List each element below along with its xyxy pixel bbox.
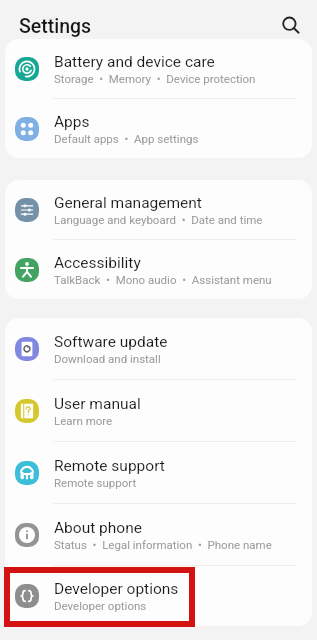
staticText: Accessibility (54, 254, 141, 272)
staticText: TalkBack • Mono audio • Assistant menu (54, 273, 272, 286)
staticText: General management (54, 194, 202, 212)
button[interactable]: Remote support (5, 442, 312, 504)
staticText: Status • Legal information • Phone name (54, 538, 272, 551)
button[interactable]: User manual (5, 380, 312, 442)
staticText: Learn more (54, 414, 113, 427)
staticText: Default apps • App settings (54, 132, 199, 145)
staticText: Developer options (54, 599, 147, 612)
staticText: About phone (54, 519, 142, 537)
button[interactable]: Apps (5, 99, 312, 158)
staticText: Storage • Memory • Device protection (54, 72, 256, 85)
staticText: Settings (19, 15, 92, 38)
staticText: Download and install (54, 352, 161, 365)
staticText: Remote support (54, 476, 137, 489)
button[interactable]: Search (273, 7, 306, 40)
staticText: Language and keyboard • Date and time (54, 213, 263, 226)
staticText: Software update (54, 333, 168, 351)
staticText: Remote support (54, 457, 165, 475)
button[interactable]: About phone (5, 504, 312, 566)
button[interactable]: Developer options (5, 566, 312, 626)
button[interactable]: Software update (5, 318, 312, 380)
button[interactable]: Battery and device care (5, 39, 312, 99)
button[interactable]: Accessibility (5, 240, 312, 299)
staticText: User manual (54, 395, 141, 413)
staticText: Battery and device care (54, 53, 215, 71)
staticText: Apps (54, 113, 90, 131)
staticText: Developer options (54, 580, 179, 598)
button[interactable]: General management (5, 180, 312, 240)
